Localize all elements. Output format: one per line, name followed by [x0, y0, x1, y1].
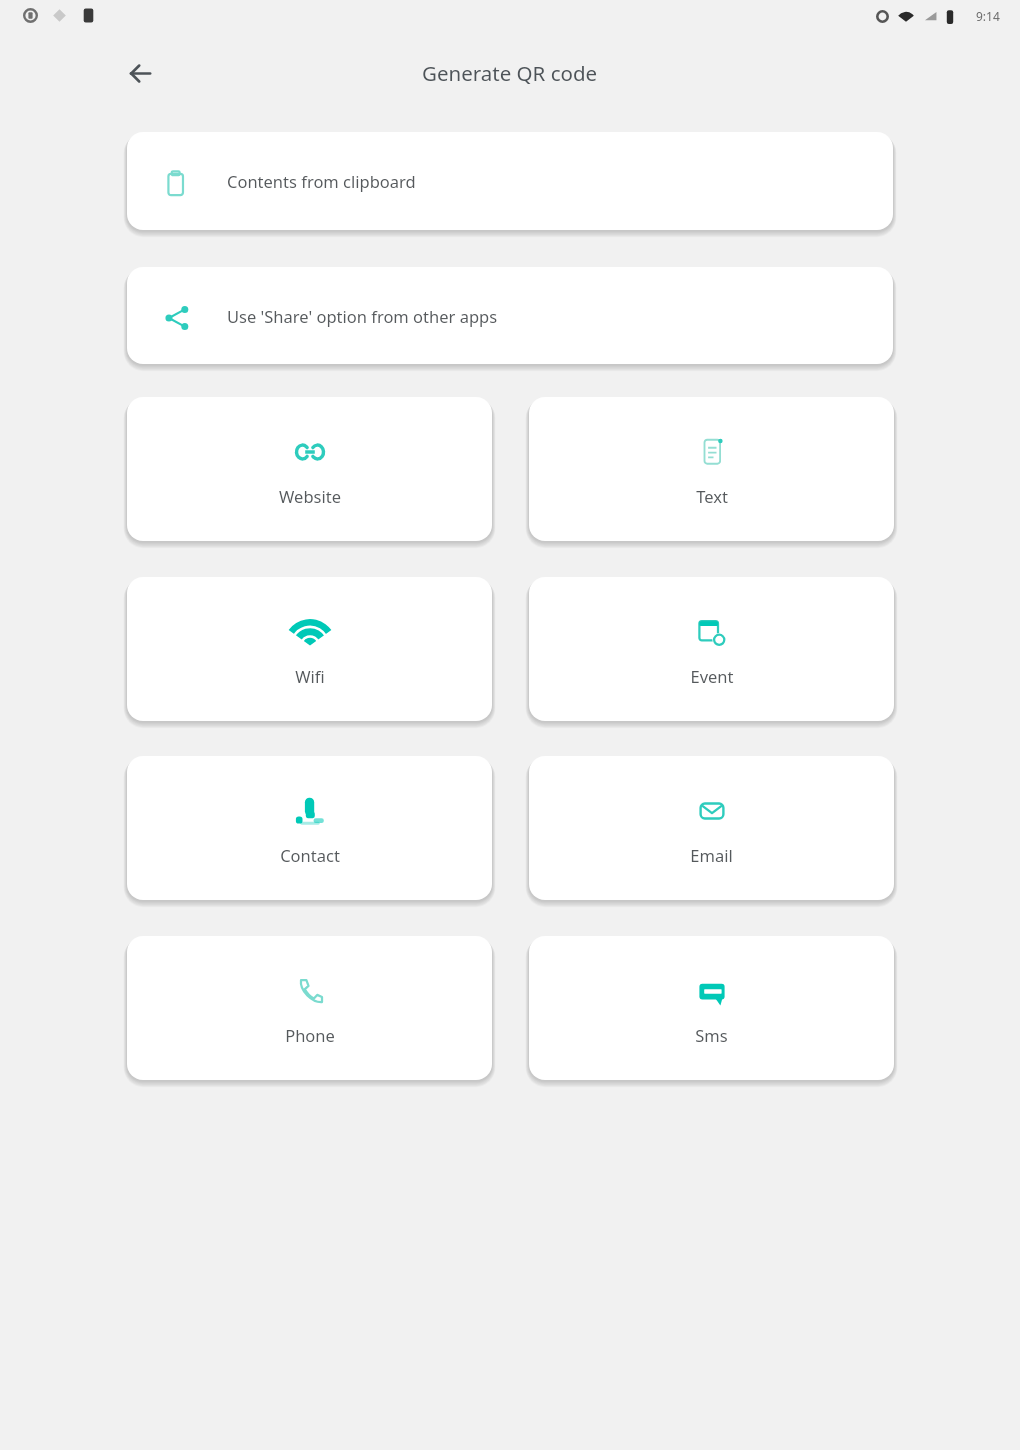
staticText: Text — [696, 485, 728, 507]
button[interactable]: Text — [529, 397, 894, 541]
staticText: Website — [279, 485, 341, 507]
button[interactable]: Wifi — [127, 577, 492, 721]
button[interactable]: Back — [112, 53, 168, 93]
staticText: Email — [690, 844, 733, 866]
button[interactable]: Contact — [127, 756, 492, 900]
button[interactable]: Event — [529, 577, 894, 721]
staticText: Generate QR code — [422, 59, 598, 87]
staticText: Contact — [280, 844, 340, 866]
staticText: Sms — [695, 1024, 728, 1046]
button[interactable]: Contents from clipboard — [127, 132, 893, 230]
staticText: Contents from clipboard — [227, 170, 416, 192]
button[interactable]: Phone — [127, 936, 492, 1080]
staticText: Wifi — [295, 665, 325, 687]
button[interactable]: Use 'Share' option from other apps — [127, 267, 893, 364]
staticText: Use 'Share' option from other apps — [227, 305, 498, 327]
staticText: Event — [690, 665, 734, 687]
staticText: 9:14 — [976, 8, 1000, 24]
staticText: Phone — [285, 1024, 335, 1046]
button[interactable]: Email — [529, 756, 894, 900]
button[interactable]: Website — [127, 397, 492, 541]
button[interactable]: Sms — [529, 936, 894, 1080]
